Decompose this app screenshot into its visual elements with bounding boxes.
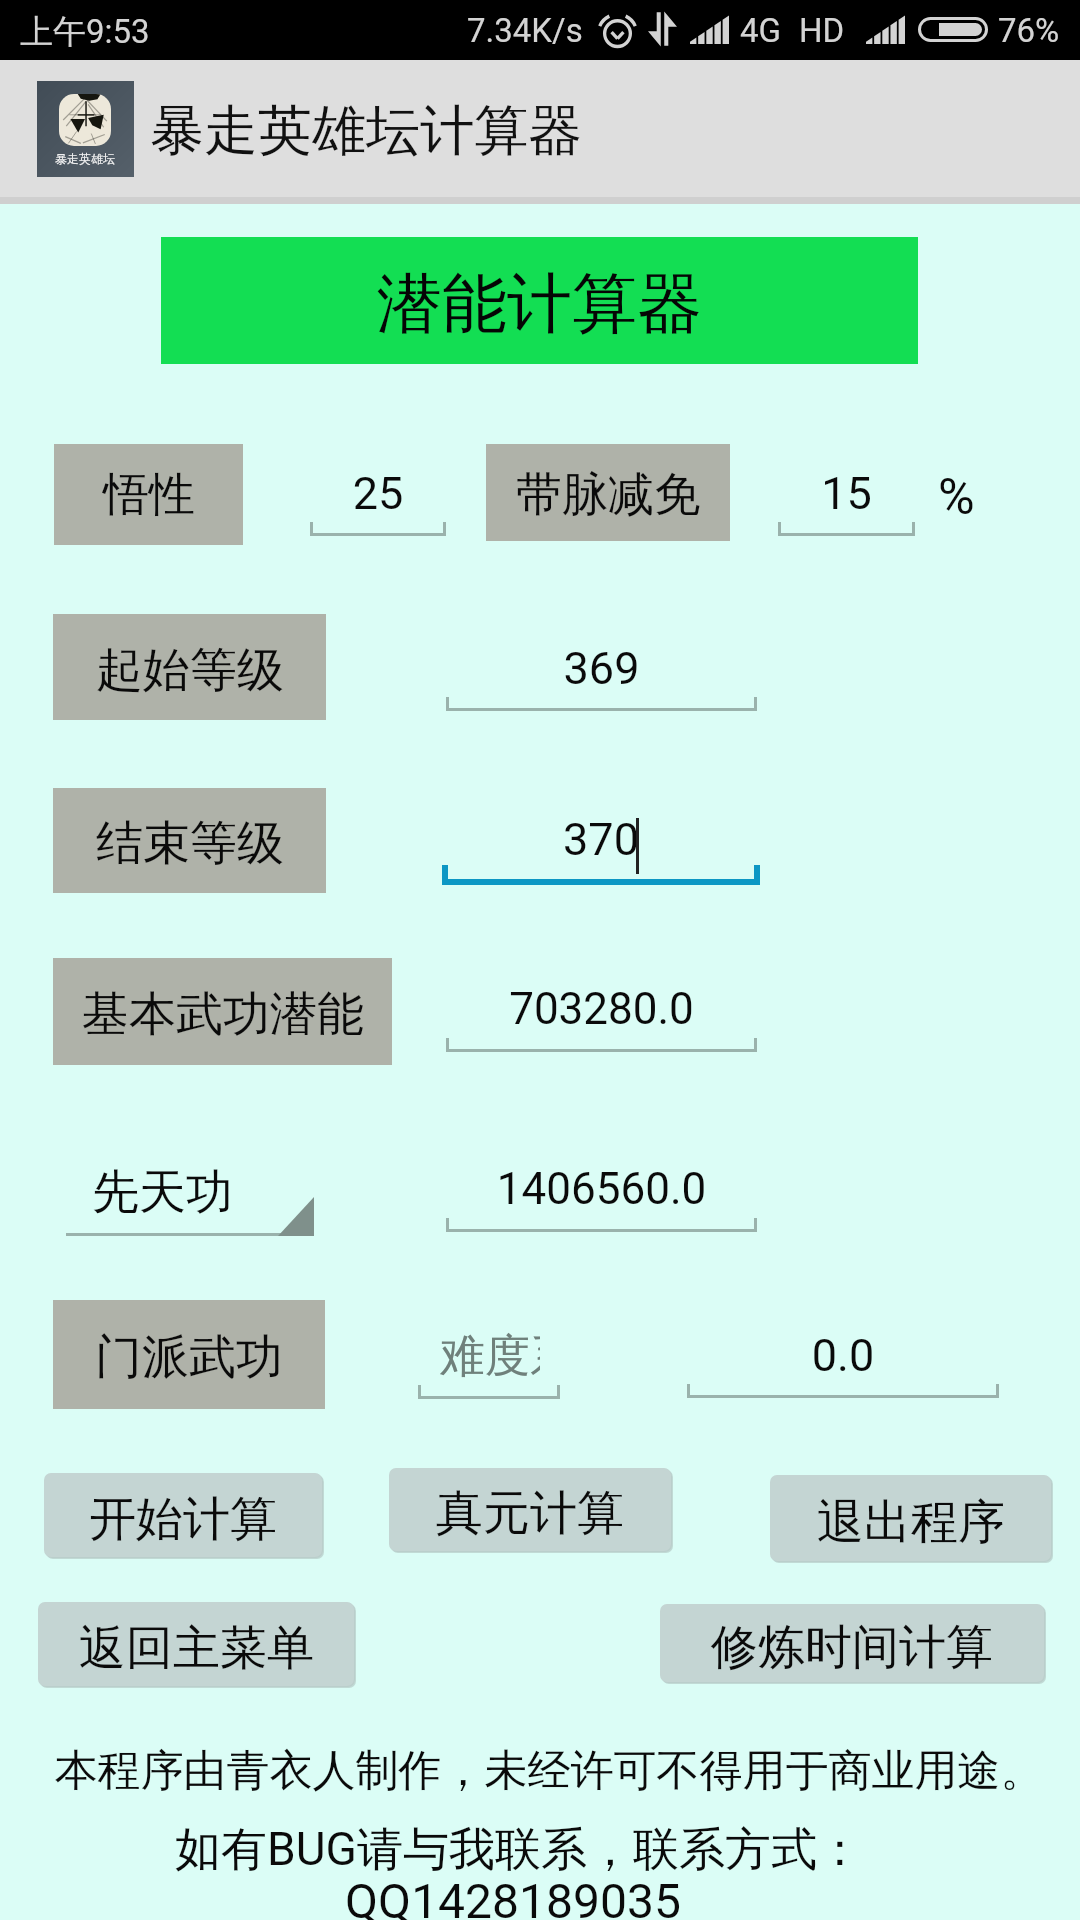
staticText: 本程序由青衣人制作，未经许可不得用于商业用途。 [9, 1744, 1080, 1798]
staticText: 结束等级 [96, 814, 284, 873]
other: App icon [37, 81, 134, 177]
button[interactable]: 基本武功潜能 [53, 958, 392, 1065]
button[interactable]: 开始计算 [44, 1473, 322, 1557]
staticText: 暴走英雄坛计算器 [150, 97, 582, 165]
staticText: 上午9:53 [20, 11, 150, 53]
button[interactable]: 修炼时间计算 [660, 1604, 1044, 1682]
button[interactable]: 先天功 [66, 1157, 314, 1236]
staticText: 如有BUG请与我联系，联系方式： [0, 1821, 1059, 1879]
staticText: 真元计算 [436, 1484, 624, 1543]
button[interactable]: 25 [310, 461, 446, 547]
button[interactable]: 难度系数 [418, 1324, 560, 1410]
button[interactable]: 真元计算 [389, 1468, 671, 1551]
staticText: QQ1428189035 [0, 1873, 1053, 1920]
staticText: 开始计算 [89, 1490, 277, 1549]
other: Mobile signal SIM 2 [866, 16, 905, 44]
staticText: 潜能计算器 [377, 263, 702, 345]
staticText: 修炼时间计算 [711, 1618, 993, 1677]
staticText: 370 [442, 813, 760, 866]
button[interactable]: 1406560.0 [446, 1157, 757, 1243]
staticText: 369 [446, 642, 757, 695]
button[interactable]: 返回主菜单 [38, 1602, 354, 1686]
staticText: 退出程序 [817, 1493, 1005, 1552]
button[interactable]: 悟性 [54, 444, 243, 545]
staticText: 25 [310, 467, 446, 520]
button[interactable]: 起始等级 [53, 614, 326, 720]
button[interactable]: 退出程序 [770, 1475, 1051, 1561]
staticText: % [938, 468, 975, 527]
staticText: 0.0 [687, 1329, 999, 1382]
staticText: 基本武功潜能 [82, 985, 364, 1044]
other: Mobile signal SIM 1 [690, 16, 729, 44]
staticText: 703280.0 [446, 983, 757, 1035]
staticText: 带脉减免 [516, 466, 700, 524]
staticText: 难度系数 [440, 1328, 540, 1382]
staticText: 悟性 [103, 466, 195, 524]
button[interactable]: 370 [442, 807, 760, 893]
staticText: 先天功 [92, 1163, 233, 1222]
staticText: 7.34K/s [467, 11, 583, 50]
button[interactable]: 369 [446, 636, 757, 722]
other: Battery 76 percent [918, 17, 988, 42]
staticText: 76% [998, 11, 1060, 50]
button[interactable]: 潜能计算器 [161, 237, 918, 364]
other: Alarm set [598, 11, 637, 50]
staticText: 返回主菜单 [79, 1619, 314, 1678]
staticText: 暴走英雄坛 [55, 151, 115, 166]
staticText: 起始等级 [96, 641, 284, 700]
button[interactable]: 结束等级 [53, 788, 326, 893]
button[interactable]: 带脉减免 [486, 444, 730, 541]
staticText: 4G [740, 11, 782, 50]
staticText: 15 [778, 467, 915, 520]
staticText: 1406560.0 [446, 1163, 757, 1215]
staticText: HD [799, 11, 845, 50]
button[interactable]: 15 [778, 461, 915, 547]
button[interactable]: 0.0 [687, 1323, 999, 1409]
other: Data transfer [648, 10, 677, 48]
button[interactable]: 门派武功 [53, 1300, 325, 1409]
button[interactable]: 703280.0 [446, 977, 757, 1063]
staticText: 门派武功 [95, 1328, 283, 1387]
